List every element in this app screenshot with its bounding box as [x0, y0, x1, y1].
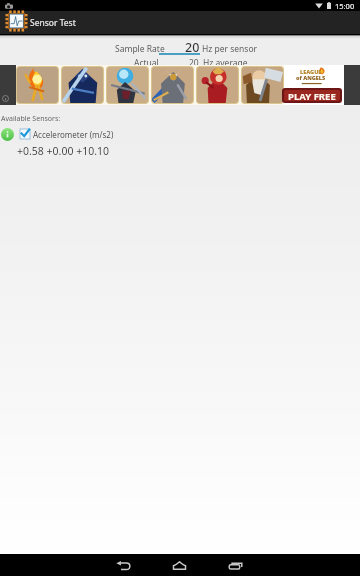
- staticText: +0.58 +0.00 +10.10: [17, 144, 109, 158]
- button[interactable]: Sensor Test: [0, 11, 360, 34]
- button[interactable]: Ad info: [2, 95, 9, 102]
- button[interactable]: 20: [159, 39, 200, 53]
- staticText: Available Sensors:: [1, 114, 61, 124]
- button[interactable]: Home: [156, 554, 202, 576]
- staticText: 15:00: [335, 1, 355, 11]
- staticText: Hz per sensor: [202, 43, 258, 55]
- button[interactable]: LEAGUE: [16, 65, 344, 105]
- staticText: 20: [189, 57, 199, 69]
- staticText: LEAGUE: [300, 68, 322, 75]
- button[interactable]: Accelerometer (m/s2): [0, 126, 360, 142]
- staticText: PLAY FREE: [288, 90, 336, 101]
- staticText: 20: [185, 39, 200, 53]
- button[interactable]: Back: [100, 554, 146, 576]
- button[interactable]: Recent apps: [212, 554, 258, 576]
- staticText: Sample Rate: [115, 43, 165, 55]
- staticText: Sensor Test: [30, 17, 76, 29]
- button[interactable]: PLAY FREE: [284, 90, 340, 101]
- staticText: Actual: [134, 57, 159, 69]
- staticText: Accelerometer (m/s2): [33, 129, 114, 140]
- staticText: of ANGELS: [296, 74, 326, 81]
- staticText: Hz average: [203, 57, 248, 69]
